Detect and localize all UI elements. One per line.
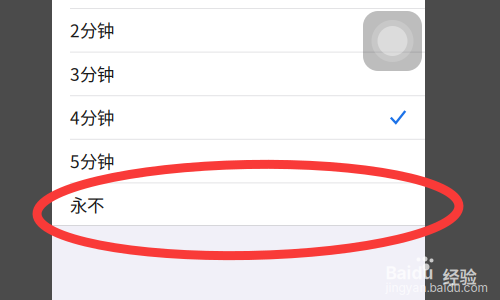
button[interactable]: 5分钟 (52, 139, 425, 182)
staticText: 永不 (70, 192, 104, 217)
button[interactable]: 3分钟 (52, 52, 425, 95)
button[interactable]: 2分钟 (52, 8, 425, 52)
button[interactable]: 4分钟 (52, 95, 425, 139)
staticText: 经验 (442, 263, 476, 289)
staticText: 3分钟 (70, 61, 114, 86)
staticText: 4分钟 (70, 104, 114, 130)
staticText: 2分钟 (70, 17, 114, 42)
staticText: 5分钟 (70, 148, 114, 173)
button[interactable]: AssistiveTouch (363, 11, 422, 71)
staticText: Baidu (385, 262, 433, 283)
staticText: jingyan.baidu.com (385, 280, 488, 295)
button[interactable]: 永不 (52, 182, 425, 226)
